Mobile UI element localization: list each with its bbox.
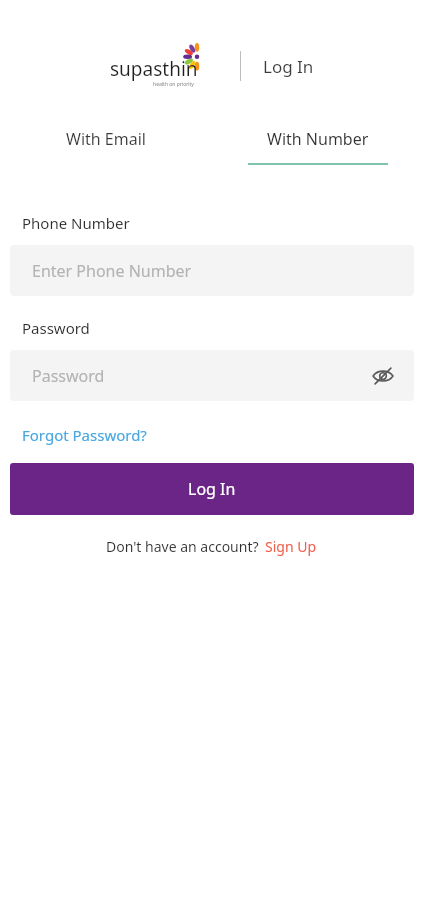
- staticText: Password: [22, 318, 90, 338]
- staticText: supasthin: [110, 56, 198, 82]
- staticText: Log In: [188, 478, 236, 500]
- staticText: Password: [32, 365, 105, 387]
- staticText: health on priority: [153, 81, 194, 88]
- staticText: Forgot Password?: [22, 425, 147, 445]
- staticText: With Number: [267, 128, 369, 150]
- staticText: Phone Number: [22, 213, 130, 233]
- staticText: With Email: [66, 128, 146, 150]
- button[interactable]: Forgot Password?: [18, 423, 151, 447]
- staticText: Enter Phone Number: [32, 260, 192, 282]
- staticText: Log In: [263, 55, 314, 78]
- button[interactable]: Enter Phone Number: [10, 245, 414, 296]
- button[interactable]: With Number: [212, 126, 424, 165]
- button[interactable]: Password: [10, 350, 414, 401]
- button[interactable]: Show password: [364, 357, 402, 395]
- button[interactable]: Log In: [10, 463, 414, 515]
- button[interactable]: Sign Up: [263, 535, 319, 558]
- button[interactable]: With Email: [0, 126, 212, 165]
- staticText: Don't have an account?: [106, 537, 263, 556]
- staticText: Sign Up: [265, 537, 317, 556]
